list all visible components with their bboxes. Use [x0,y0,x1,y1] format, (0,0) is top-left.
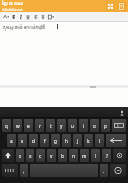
button[interactable]: l [95,134,104,147]
button[interactable]: q [2,119,11,132]
button[interactable]: Align center [40,13,46,21]
staticText: n [72,153,75,159]
staticText: j [77,138,79,144]
button[interactable]: a [7,134,16,147]
button[interactable]: Shift [2,149,14,162]
button[interactable]: b [58,149,67,162]
button[interactable]: Settings [113,149,126,162]
button[interactable]: t [46,119,55,132]
button[interactable]: Bold [11,13,17,21]
button[interactable]: e [24,119,33,132]
button[interactable]: h [62,134,71,147]
button[interactable]: i [79,119,88,132]
staticText: f [44,138,46,144]
button[interactable]: Underline [25,13,31,21]
staticText: p [104,123,107,129]
button[interactable]: Menu [117,2,126,11]
staticText: q [5,123,8,129]
button[interactable]: v [47,149,56,162]
button[interactable]: y [57,119,66,132]
button[interactable]: Backspace [106,134,126,147]
button[interactable]: f [40,134,49,147]
button[interactable]: Align left [33,13,39,21]
button[interactable]: Space [30,164,98,177]
button[interactable]: ! [91,149,100,162]
staticText: b [61,153,64,159]
staticText: m [82,153,87,159]
staticText: z [19,153,22,159]
staticText: a [10,138,13,144]
staticText: e [27,123,30,129]
button[interactable]: s [18,134,27,147]
staticText: c [39,153,42,159]
button[interactable]: u [68,119,77,132]
button[interactable]: Italic [18,13,24,21]
button[interactable]: Share [106,2,115,11]
staticText: d [32,138,35,144]
button[interactable]: Symbols [112,119,126,132]
button[interactable]: w [13,119,22,132]
button[interactable]: Enter [110,164,126,177]
staticText: u [71,123,74,129]
staticText: . [103,168,105,174]
staticText: x [29,153,32,159]
button[interactable]: z [16,149,24,162]
button[interactable]: . [100,164,108,177]
staticText: , [23,168,25,174]
button[interactable]: ? [102,149,111,162]
staticText: សារណា​រ​បស់ [2,7,23,12]
staticText: y [60,123,63,129]
button[interactable]: o [90,119,99,132]
staticText: s [21,138,24,144]
staticText: ? [106,153,108,159]
button[interactable]: j [73,134,82,147]
button[interactable]: Insert [47,13,55,21]
button[interactable]: សូមស្វាគមន៍ មកកាន់កម្មវិធី [0,22,128,85]
button[interactable]: r [35,119,44,132]
button[interactable]: Switch keyboard [2,164,18,177]
button[interactable]: p [101,119,110,132]
button[interactable]: Text style [2,13,10,21]
button[interactable]: , [20,164,28,177]
staticText: o [93,123,96,129]
staticText: r [39,123,41,129]
button[interactable]: g [51,134,60,147]
staticText: l [99,138,101,144]
staticText: v [50,153,53,159]
button[interactable]: d [29,134,38,147]
staticText: k [87,138,90,144]
staticText: t [50,123,52,129]
staticText: w [16,123,20,129]
button[interactable]: n [69,149,78,162]
staticText: h [65,138,68,144]
staticText: i [83,123,85,129]
staticText: g [54,138,57,144]
staticText: ខ្មែរ ជា ភាសា [2,1,24,7]
staticText: សូមស្វាគមន៍ មកកាន់កម្មវិធី [3,25,45,31]
button[interactable]: Voice input [118,109,126,117]
button[interactable]: c [36,149,45,162]
staticText: ! [95,153,97,159]
button[interactable]: x [26,149,34,162]
button[interactable]: k [84,134,93,147]
button[interactable]: m [80,149,89,162]
